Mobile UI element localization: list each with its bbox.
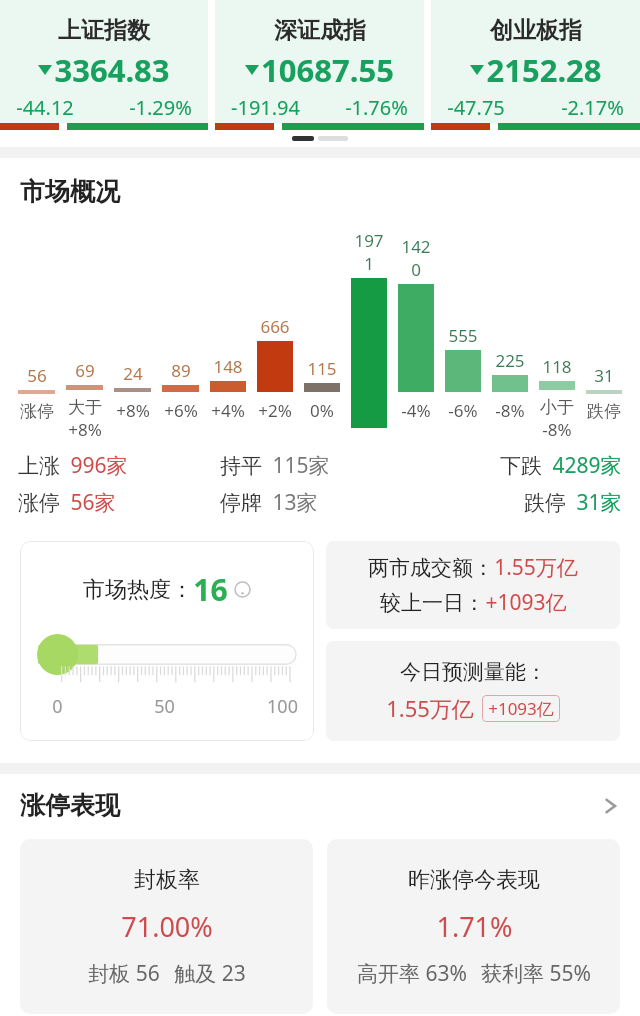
staticText: -44.12 [16, 94, 74, 121]
button[interactable]: 上涨 [18, 451, 220, 480]
staticText: 69 [75, 359, 95, 382]
staticText: 封板 56 [88, 959, 160, 988]
staticText: 下跌 [500, 453, 542, 479]
staticText: +4% [211, 399, 245, 422]
staticText: 0 [52, 694, 63, 719]
staticText: 89 [171, 359, 191, 382]
button[interactable]: 上证指数 [0, 0, 208, 130]
staticText: 996家 [70, 451, 128, 480]
button[interactable]: 封板率 [20, 839, 313, 1014]
staticText: 1.55万亿 [494, 553, 578, 582]
staticText: 上涨 [18, 453, 60, 479]
staticText: 3364.83 [54, 49, 170, 91]
staticText: 50 [154, 694, 175, 719]
staticText: 深证成指 [274, 16, 366, 45]
staticText: 666 [260, 315, 290, 338]
staticText: -8% [495, 399, 525, 422]
staticText: +2% [258, 399, 292, 422]
staticText: 市场热度： [83, 576, 193, 604]
staticText: -1.76% [345, 94, 408, 121]
staticText: 大于 [68, 397, 102, 418]
staticText: 今日预测量能： [400, 659, 547, 685]
staticText: +8% [68, 418, 102, 441]
button[interactable]: 持平 [220, 451, 421, 480]
staticText: 148 [213, 355, 243, 378]
other: 帮助 [234, 581, 251, 598]
button[interactable]: 今日预测量能： [326, 641, 620, 741]
staticText: 31家 [576, 488, 622, 517]
staticText: 2152.28 [486, 49, 602, 91]
staticText: 涨停 [20, 401, 54, 422]
staticText: -8% [542, 418, 572, 441]
staticText: 触及 23 [174, 959, 246, 988]
button[interactable]: 停牌 [220, 488, 421, 517]
staticText: 跌停 [524, 490, 566, 516]
staticText: 4289家 [552, 451, 622, 480]
staticText: 115 [307, 357, 337, 380]
staticText: 118 [542, 355, 572, 378]
staticText: 31 [594, 364, 614, 387]
button[interactable]: 下跌 [421, 451, 622, 480]
staticText: -2.17% [561, 94, 624, 121]
staticText: 涨停 [18, 490, 60, 516]
staticText: -1.29% [129, 94, 192, 121]
button[interactable]: 创业板指 [431, 0, 640, 130]
staticText: 555 [448, 324, 478, 347]
staticText: 1.71% [436, 908, 513, 945]
staticText: 停牌 [220, 490, 262, 516]
staticText: 16 [193, 569, 228, 610]
staticText: 100 [267, 694, 298, 719]
staticText: 小于 [540, 397, 574, 418]
staticText: 0% [310, 399, 334, 422]
staticText: -6% [448, 399, 478, 422]
staticText: -191.94 [231, 94, 300, 121]
staticText: 创业板指 [490, 16, 582, 45]
staticText: 涨停表现 [20, 790, 120, 821]
staticText: 上证指数 [58, 16, 150, 45]
staticText: +6% [164, 399, 198, 422]
staticText: -47.75 [447, 94, 505, 121]
staticText: 高开率 63% [357, 959, 467, 988]
button[interactable]: 两市成交额： [326, 541, 620, 629]
staticText: 跌停 [587, 401, 621, 422]
staticText: 两市成交额： [368, 555, 494, 581]
staticText: 市场概况 [20, 176, 120, 207]
staticText: 昨涨停今表现 [408, 866, 540, 894]
button[interactable]: 市场热度： [20, 541, 314, 741]
staticText: 10687.55 [261, 49, 394, 91]
other: 更多 [602, 793, 620, 819]
staticText: +1093亿 [485, 588, 567, 617]
button[interactable]: 跌停 [421, 488, 622, 517]
staticText: 1420 [398, 235, 434, 281]
staticText: 225 [495, 349, 525, 372]
staticText: +1093亿 [488, 697, 554, 720]
staticText: 71.00% [121, 908, 213, 945]
staticText: 获利率 55% [481, 959, 591, 988]
staticText: 1971 [351, 229, 387, 275]
staticText: 13家 [272, 488, 318, 517]
button[interactable]: 涨停表现 [20, 790, 620, 821]
staticText: 24 [123, 362, 143, 385]
staticText: 较上一日： [380, 590, 485, 616]
button[interactable]: 涨停 [18, 488, 220, 517]
staticText: 56 [27, 364, 47, 387]
button[interactable]: 昨涨停今表现 [327, 839, 620, 1014]
staticText: 115家 [272, 451, 330, 480]
button[interactable]: 深证成指 [215, 0, 424, 130]
staticText: 封板率 [134, 866, 200, 894]
staticText: 1.55万亿 [386, 693, 474, 723]
staticText: +8% [116, 399, 150, 422]
staticText: 56家 [70, 488, 116, 517]
staticText: -4% [401, 399, 431, 422]
staticText: 持平 [220, 453, 262, 479]
